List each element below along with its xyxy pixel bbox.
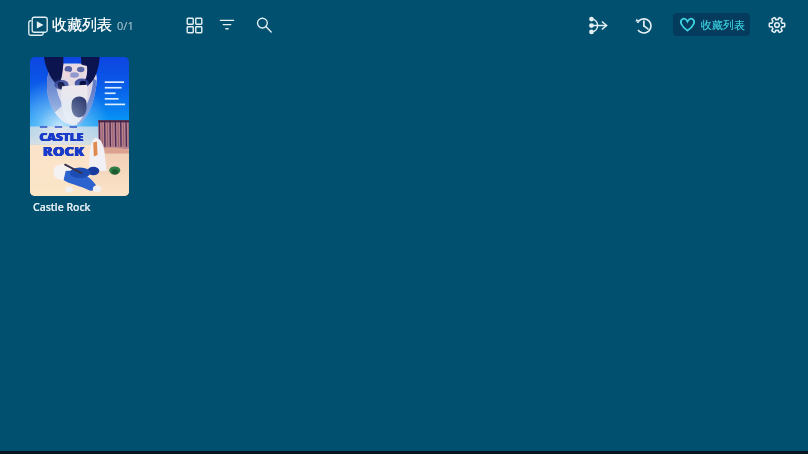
button[interactable]: Filter (212, 10, 242, 40)
staticText: 0/1 (117, 18, 134, 33)
staticText: 收藏列表 (52, 16, 112, 35)
button[interactable]: 收藏列表 (673, 13, 750, 36)
button[interactable]: Grid view (179, 10, 209, 40)
button[interactable]: Merge (583, 10, 613, 40)
button[interactable]: History (628, 10, 658, 40)
staticText: 收藏列表 (701, 18, 745, 32)
button[interactable]: 收藏列表 (19, 8, 142, 42)
staticText: Castle Rock (33, 200, 91, 214)
button[interactable]: Search (249, 10, 279, 40)
button[interactable]: Settings (762, 10, 792, 40)
button[interactable]: Castle Rock (24, 51, 135, 220)
